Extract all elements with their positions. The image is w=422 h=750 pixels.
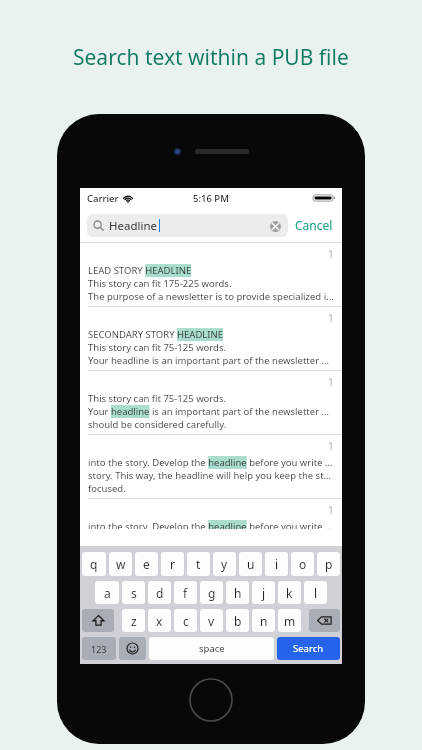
staticText: 1 — [328, 375, 334, 389]
staticText: story. This way, the headline will help … — [88, 469, 334, 482]
staticText: The purpose of a newsletter is to provid… — [88, 290, 334, 303]
staticText: This story can fit 75-125 words. — [88, 341, 227, 354]
staticText: This story can fit 75-125 words. — [88, 392, 227, 405]
staticText: SECONDARY STORY HEADLINE — [88, 328, 224, 341]
staticText: g — [208, 585, 216, 601]
staticText: q — [90, 556, 98, 572]
staticText: Search text within a PUB file — [73, 43, 349, 72]
staticText: Your headline is an important part of th… — [88, 354, 334, 367]
staticText: space — [199, 642, 225, 655]
staticText: LEAD STORY HEADLINE — [88, 264, 192, 277]
button[interactable]: w — [109, 552, 132, 576]
staticText: 123 — [91, 643, 107, 655]
button[interactable]: v — [200, 609, 223, 632]
staticText: j — [262, 585, 266, 601]
staticText: Your headline is an important part of th… — [88, 405, 334, 418]
button[interactable]: Clear search text — [268, 219, 282, 233]
button[interactable]: 1 — [80, 307, 342, 370]
staticText: h — [234, 585, 242, 601]
staticText: s — [131, 585, 137, 601]
staticText: u — [247, 556, 255, 572]
button[interactable]: b — [226, 609, 249, 632]
staticText: m — [284, 613, 296, 629]
button[interactable]: 1 — [80, 243, 342, 306]
staticText: e — [143, 556, 150, 572]
staticText: y — [221, 556, 228, 572]
staticText: o — [299, 556, 307, 572]
staticText: into the story. Develop the headline bef… — [88, 456, 334, 469]
button[interactable]: h — [226, 581, 249, 604]
staticText: This story can fit 175-225 words. — [88, 277, 232, 290]
button[interactable]: space — [149, 637, 274, 660]
button[interactable]: q — [82, 552, 106, 576]
button[interactable]: Shift — [82, 609, 114, 632]
button[interactable]: u — [239, 552, 262, 576]
staticText: n — [260, 613, 268, 629]
staticText: f — [183, 585, 188, 601]
staticText: Search — [293, 642, 324, 655]
staticText: w — [116, 556, 126, 572]
button[interactable]: m — [278, 609, 301, 632]
button[interactable]: 1 — [80, 371, 342, 434]
button[interactable]: Emoji — [119, 637, 146, 660]
staticText: x — [156, 613, 163, 629]
button[interactable]: k — [278, 581, 301, 604]
button[interactable]: 123 — [82, 637, 116, 660]
button[interactable]: 1 — [80, 499, 342, 529]
button[interactable]: a — [95, 581, 119, 604]
staticText: 5:16 PM — [193, 192, 229, 205]
staticText: Carrier — [87, 192, 119, 205]
button[interactable]: f — [174, 581, 197, 604]
staticText: into the story. Develop the headline bef… — [88, 520, 334, 529]
button[interactable]: p — [317, 552, 340, 576]
staticText: r — [170, 556, 175, 572]
staticText: i — [275, 556, 279, 572]
staticText: Cancel — [295, 217, 333, 233]
staticText: l — [314, 585, 318, 601]
staticText: b — [234, 613, 242, 629]
button[interactable]: Search — [277, 637, 340, 660]
staticText: 1 — [328, 503, 334, 517]
button[interactable]: Headline — [87, 214, 288, 237]
button[interactable]: o — [291, 552, 314, 576]
staticText: c — [183, 613, 189, 629]
button[interactable]: Cancel — [288, 217, 335, 233]
staticText: p — [325, 556, 333, 572]
button[interactable]: l — [304, 581, 327, 604]
button[interactable]: g — [200, 581, 223, 604]
staticText: t — [196, 556, 201, 572]
button[interactable]: r — [161, 552, 184, 576]
button[interactable]: s — [122, 581, 145, 604]
staticText: 1 — [328, 247, 334, 261]
staticText: a — [104, 585, 111, 601]
staticText: should be considered carefully. — [88, 418, 227, 431]
button[interactable]: c — [174, 609, 197, 632]
staticText: d — [156, 585, 164, 601]
button[interactable]: y — [213, 552, 236, 576]
button[interactable]: 1 — [80, 435, 342, 498]
button[interactable]: i — [265, 552, 288, 576]
staticText: k — [286, 585, 293, 601]
staticText: 1 — [328, 439, 334, 453]
staticText: focused. — [88, 482, 126, 495]
button[interactable]: t — [187, 552, 210, 576]
button[interactable]: j — [252, 581, 275, 604]
staticText: v — [208, 613, 215, 629]
button[interactable]: z — [122, 609, 145, 632]
staticText: Headline — [109, 218, 158, 234]
button[interactable]: x — [148, 609, 171, 632]
staticText: 1 — [328, 311, 334, 325]
button[interactable]: Backspace — [309, 609, 340, 632]
staticText: z — [131, 613, 137, 629]
button[interactable]: e — [135, 552, 158, 576]
button[interactable]: d — [148, 581, 171, 604]
button[interactable]: n — [252, 609, 275, 632]
